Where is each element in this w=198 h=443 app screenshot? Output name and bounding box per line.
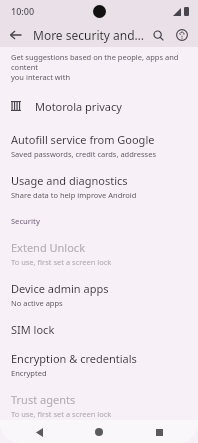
button[interactable]: Motorola privacy (0, 94, 198, 118)
button[interactable]: Back (28, 421, 50, 443)
button[interactable]: Search (147, 24, 169, 46)
staticText: No active apps (11, 298, 63, 308)
staticText: Autofill service from Google (11, 132, 155, 147)
button[interactable]: SIM lock (0, 322, 198, 337)
staticText: To use, first set a screen lock (11, 409, 112, 419)
button[interactable]: Home (88, 421, 110, 443)
button[interactable]: Autofill service from Google (0, 132, 198, 159)
button[interactable]: Encryption & credentials (0, 351, 198, 378)
staticText: More security and priva… (33, 27, 147, 43)
staticText: Device admin apps (11, 281, 109, 296)
staticText: SIM lock (11, 322, 55, 337)
staticText: 10:00 (11, 5, 35, 17)
staticText: Get suggestions based on the people, app… (11, 52, 192, 82)
staticText: Motorola privacy (35, 99, 122, 114)
staticText: Extend Unlock (11, 240, 86, 255)
staticText: Security (11, 216, 40, 226)
button[interactable]: Recent apps (148, 421, 170, 443)
staticText: Trust agents (11, 392, 76, 407)
button[interactable]: Extend Unlock (0, 240, 198, 267)
staticText: Usage and diagnostics (11, 173, 128, 188)
staticText: Encrypted (11, 368, 47, 378)
staticText: Saved passwords, credit cards, addresses (11, 149, 156, 159)
staticText: Share data to help improve Android (11, 190, 137, 200)
staticText: To use, first set a screen lock (11, 257, 112, 267)
button[interactable]: Usage and diagnostics (0, 173, 198, 200)
button[interactable]: Help (171, 24, 193, 46)
staticText: Encryption & credentials (11, 351, 137, 366)
button[interactable]: Device admin apps (0, 281, 198, 308)
button[interactable]: Trust agents (0, 392, 198, 419)
button[interactable]: Back (5, 24, 27, 46)
